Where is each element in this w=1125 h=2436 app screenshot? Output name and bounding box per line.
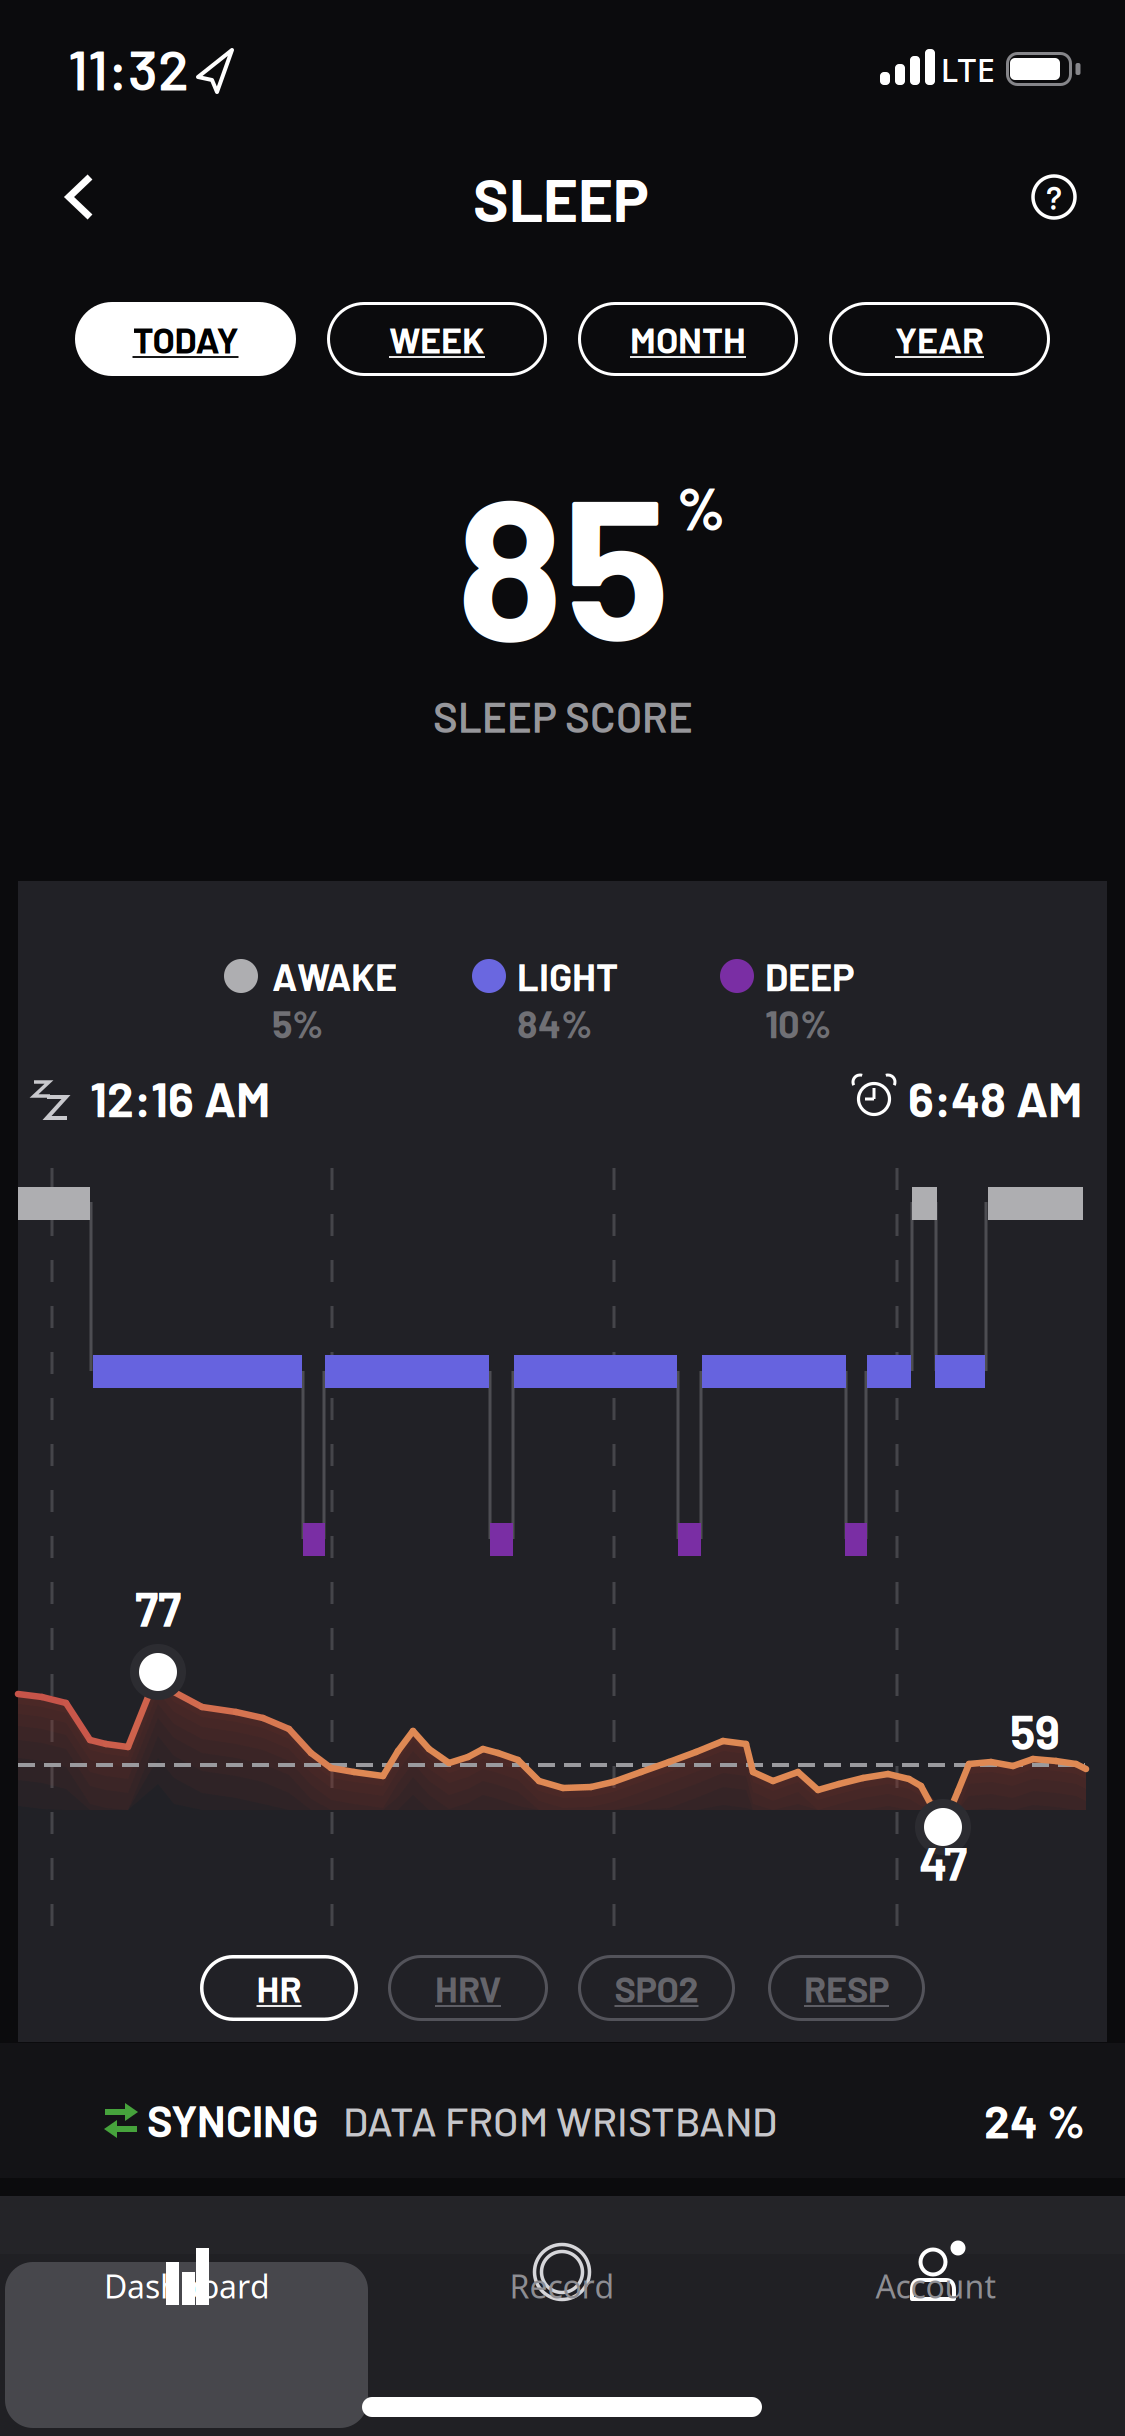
- staticText: Record: [509, 2265, 614, 2307]
- button[interactable]: Back: [38, 166, 118, 228]
- button[interactable]: Account: [821, 2221, 1051, 2331]
- staticText: DATA FROM WRISTBAND: [343, 2095, 777, 2145]
- staticText: LIGHT: [517, 953, 618, 999]
- button[interactable]: HR: [200, 1955, 358, 2021]
- staticText: TODAY: [132, 317, 238, 361]
- button[interactable]: HRV: [388, 1955, 548, 2021]
- button[interactable]: WEEK: [327, 302, 547, 376]
- staticText: SPO2: [614, 1966, 698, 2010]
- staticText: 24 %: [984, 2092, 1085, 2148]
- staticText: 84%: [517, 1000, 592, 1046]
- staticText: AWAKE: [272, 953, 397, 999]
- staticText: 10%: [765, 1000, 831, 1046]
- button[interactable]: Record: [421, 2221, 703, 2331]
- staticText: DEEP: [765, 953, 855, 999]
- staticText: SLEEP: [473, 162, 649, 234]
- staticText: MONTH: [630, 317, 746, 361]
- staticText: Dashboard: [104, 2265, 270, 2307]
- staticText: 47: [919, 1834, 967, 1890]
- staticText: Account: [875, 2265, 996, 2307]
- staticText: 12:16 AM: [90, 1069, 270, 1127]
- staticText: 85: [456, 444, 669, 680]
- button[interactable]: SPO2: [578, 1955, 735, 2021]
- staticText: SLEEP SCORE: [433, 691, 693, 741]
- staticText: 11:32: [68, 34, 189, 102]
- staticText: 6:48 AM: [908, 1069, 1082, 1127]
- staticText: 77: [135, 1580, 181, 1636]
- button[interactable]: YEAR: [829, 302, 1050, 376]
- staticText: RESP: [804, 1966, 889, 2010]
- staticText: 5%: [272, 1000, 323, 1046]
- button[interactable]: TODAY: [75, 302, 296, 376]
- staticText: HRV: [435, 1966, 501, 2010]
- button[interactable]: Dashboard: [46, 2221, 328, 2331]
- staticText: ?: [1046, 178, 1062, 216]
- button[interactable]: MONTH: [578, 302, 798, 376]
- staticText: LTE: [940, 47, 995, 91]
- staticText: HR: [256, 1966, 301, 2010]
- button[interactable]: RESP: [768, 1955, 925, 2021]
- staticText: WEEK: [389, 317, 485, 361]
- staticText: YEAR: [895, 317, 984, 361]
- staticText: SYNCING: [147, 2094, 318, 2146]
- staticText: %: [676, 472, 725, 542]
- staticText: 59: [1010, 1703, 1060, 1759]
- button[interactable]: Help: [1014, 157, 1094, 237]
